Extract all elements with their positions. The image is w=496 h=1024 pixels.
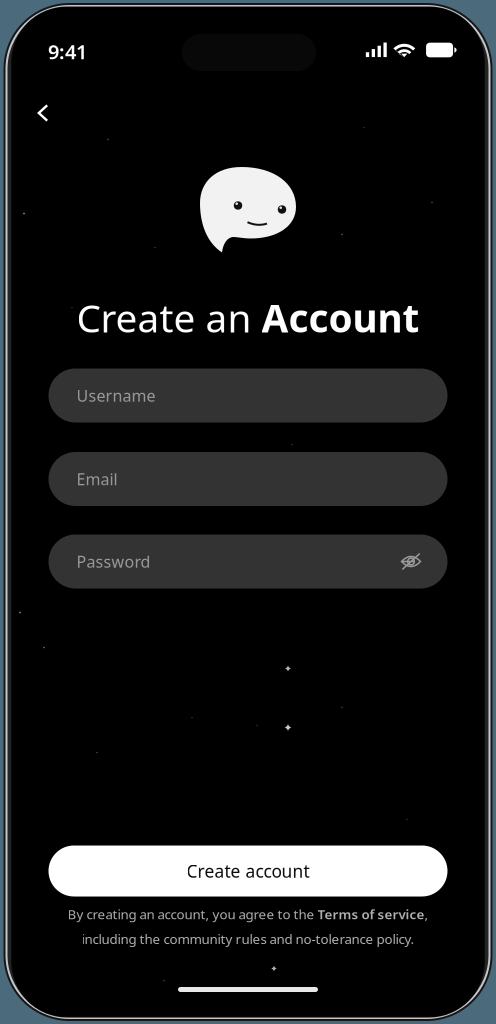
staticText: By creating an account, you agree to the… xyxy=(67,905,428,923)
staticText: Create account xyxy=(186,859,309,882)
button[interactable]: Password xyxy=(48,534,447,588)
button[interactable]: Create account xyxy=(48,845,447,896)
staticText: Username xyxy=(76,385,155,406)
staticText: Password xyxy=(76,551,150,572)
staticText: 9:41 xyxy=(48,38,87,65)
button[interactable]: Back xyxy=(21,91,65,135)
staticText: Create an Account xyxy=(76,292,419,343)
staticText: Email xyxy=(76,468,117,490)
button[interactable]: Email xyxy=(48,452,447,506)
staticText: including the community rules and no-tol… xyxy=(81,930,414,948)
button[interactable]: Username xyxy=(48,368,447,422)
